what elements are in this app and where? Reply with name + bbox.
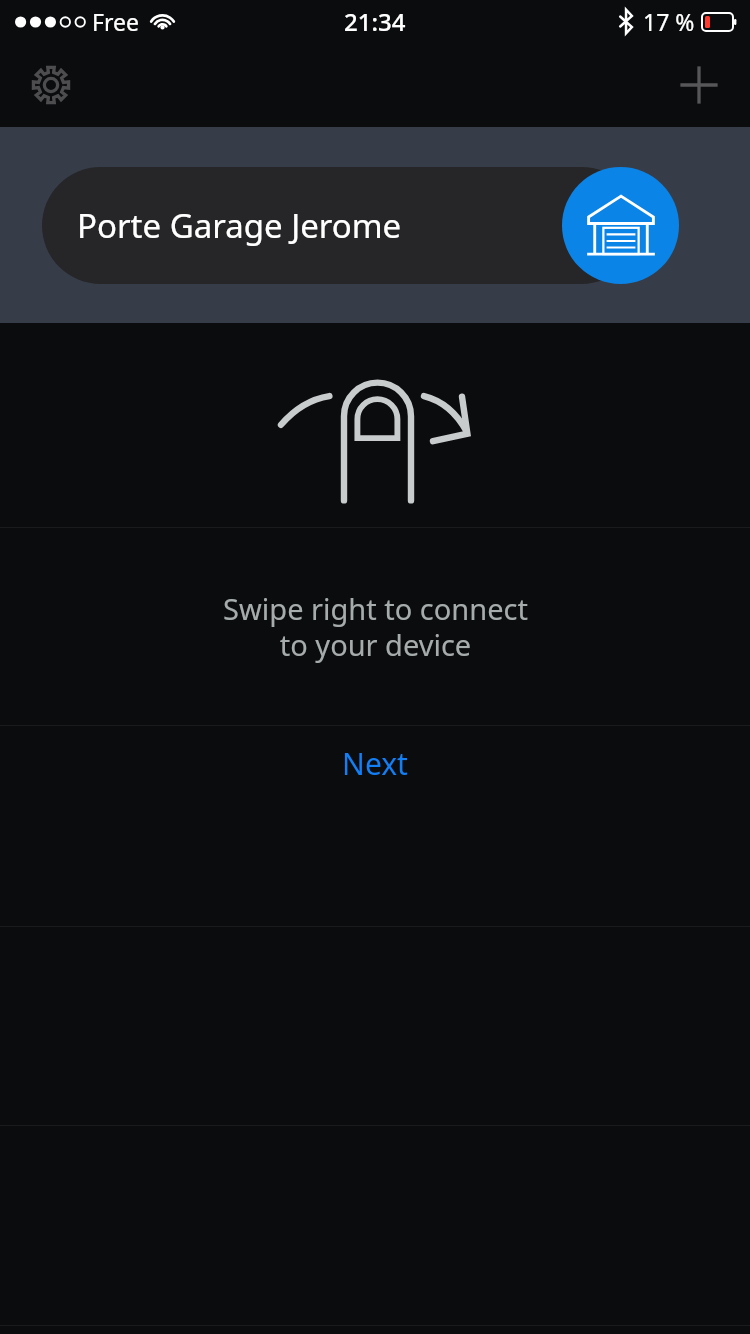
button[interactable]: Next bbox=[0, 726, 750, 926]
staticText: Free bbox=[92, 6, 139, 37]
staticText: 17 % bbox=[643, 6, 695, 37]
staticText: 21:34 bbox=[344, 5, 406, 38]
staticText: Swipe right to connect to your device bbox=[223, 589, 528, 665]
button[interactable]: Add device bbox=[662, 48, 736, 122]
button[interactable]: Porte Garage Jerome bbox=[42, 167, 640, 284]
staticText: Next bbox=[342, 743, 408, 784]
button[interactable]: Garage door bbox=[562, 167, 679, 284]
button[interactable]: Settings bbox=[14, 48, 88, 122]
staticText: Porte Garage Jerome bbox=[77, 203, 402, 248]
